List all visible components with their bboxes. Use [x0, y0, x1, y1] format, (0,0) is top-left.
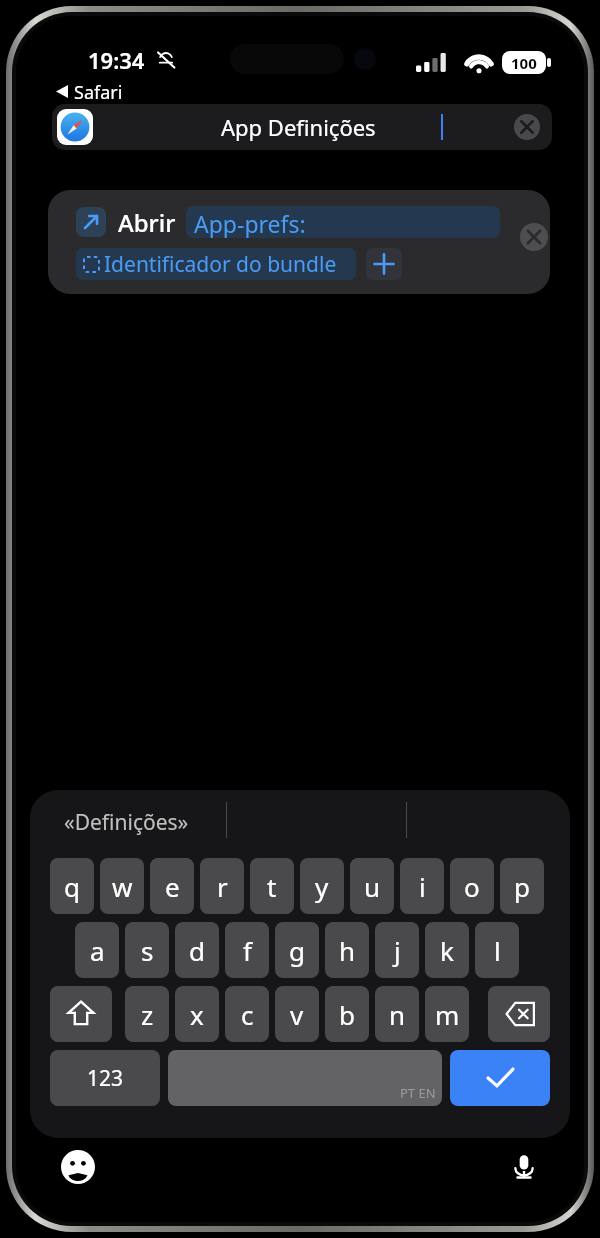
button[interactable]: p: [500, 858, 544, 914]
button[interactable]: w: [100, 858, 144, 914]
staticText: u: [364, 869, 381, 904]
button[interactable]: Emoji: [61, 1150, 95, 1184]
staticText: d: [189, 933, 205, 968]
staticText: m: [435, 997, 460, 1032]
staticText: 100: [511, 53, 537, 73]
staticText: t: [267, 869, 277, 904]
button[interactable]: Clear: [514, 114, 540, 140]
button[interactable]: Done: [450, 1050, 550, 1106]
staticText: y: [315, 869, 329, 904]
staticText: j: [394, 933, 401, 968]
button[interactable]: q: [50, 858, 94, 914]
button[interactable]: Safari: [52, 78, 142, 104]
staticText: h: [339, 933, 356, 968]
staticText: c: [241, 997, 254, 1032]
button[interactable]: Dictate: [506, 1148, 542, 1184]
staticText: Abrir: [118, 206, 176, 239]
button[interactable]: h: [325, 922, 369, 978]
staticText: k: [440, 933, 454, 968]
button[interactable]: App-prefs:: [186, 206, 500, 238]
staticText: s: [141, 933, 154, 968]
button[interactable]: 123: [50, 1050, 160, 1106]
button[interactable]: l: [475, 922, 519, 978]
staticText: l: [494, 933, 501, 968]
staticText: p: [514, 869, 530, 904]
staticText: Identificador do bundle: [104, 250, 337, 279]
staticText: PT EN: [400, 1084, 436, 1102]
staticText: 123: [87, 1064, 124, 1093]
button[interactable]: Backspace: [488, 986, 550, 1042]
staticText: i: [419, 869, 426, 904]
staticText: z: [141, 997, 154, 1032]
button[interactable]: b: [325, 986, 369, 1042]
staticText: f: [243, 933, 252, 968]
button[interactable]: t: [250, 858, 294, 914]
button[interactable]: c: [225, 986, 269, 1042]
button[interactable]: u: [350, 858, 394, 914]
staticText: o: [464, 869, 480, 904]
button[interactable]: k: [425, 922, 469, 978]
button[interactable]: m: [425, 986, 469, 1042]
staticText: x: [190, 997, 204, 1032]
staticText: a: [90, 933, 105, 968]
button[interactable]: Identificador do bundle: [76, 248, 356, 280]
staticText: b: [339, 997, 355, 1032]
staticText: w: [112, 869, 133, 904]
staticText: App Definições: [221, 112, 376, 142]
button[interactable]: g: [275, 922, 319, 978]
button[interactable]: Add variable: [366, 248, 402, 280]
staticText: Safari: [74, 80, 123, 105]
button[interactable]: Remove action: [520, 223, 548, 251]
button[interactable]: z: [125, 986, 169, 1042]
button[interactable]: s: [125, 922, 169, 978]
button[interactable]: y: [300, 858, 344, 914]
button[interactable]: e: [150, 858, 194, 914]
staticText: g: [289, 933, 305, 968]
button[interactable]: Space: [168, 1050, 442, 1106]
button[interactable]: v: [275, 986, 319, 1042]
button[interactable]: Abrir: [48, 190, 550, 294]
button[interactable]: App Definições: [52, 104, 552, 150]
button[interactable]: f: [225, 922, 269, 978]
button[interactable]: o: [450, 858, 494, 914]
staticText: n: [389, 997, 406, 1032]
staticText: 19:34: [88, 45, 145, 75]
button[interactable]: n: [375, 986, 419, 1042]
button[interactable]: d: [175, 922, 219, 978]
staticText: App-prefs:: [194, 208, 306, 238]
button[interactable]: r: [200, 858, 244, 914]
button[interactable]: a: [75, 922, 119, 978]
staticText: e: [165, 869, 180, 904]
button[interactable]: x: [175, 986, 219, 1042]
staticText: v: [290, 997, 304, 1032]
staticText: q: [64, 869, 80, 904]
button[interactable]: j: [375, 922, 419, 978]
button[interactable]: i: [400, 858, 444, 914]
button[interactable]: «Definições»: [64, 808, 189, 837]
staticText: r: [217, 869, 228, 904]
button[interactable]: Shift: [50, 986, 112, 1042]
